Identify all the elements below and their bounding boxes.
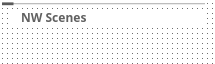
staticText: NW Scenes (21, 9, 87, 25)
